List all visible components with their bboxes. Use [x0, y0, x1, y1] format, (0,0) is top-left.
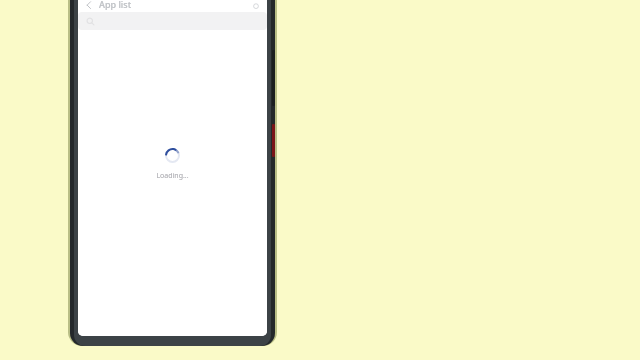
button[interactable]: Back [82, 0, 96, 10]
staticText: App list [99, 0, 132, 10]
button[interactable]: More options [249, 0, 263, 10]
button[interactable]: Power [272, 124, 275, 157]
staticText: Loading... [156, 171, 189, 181]
